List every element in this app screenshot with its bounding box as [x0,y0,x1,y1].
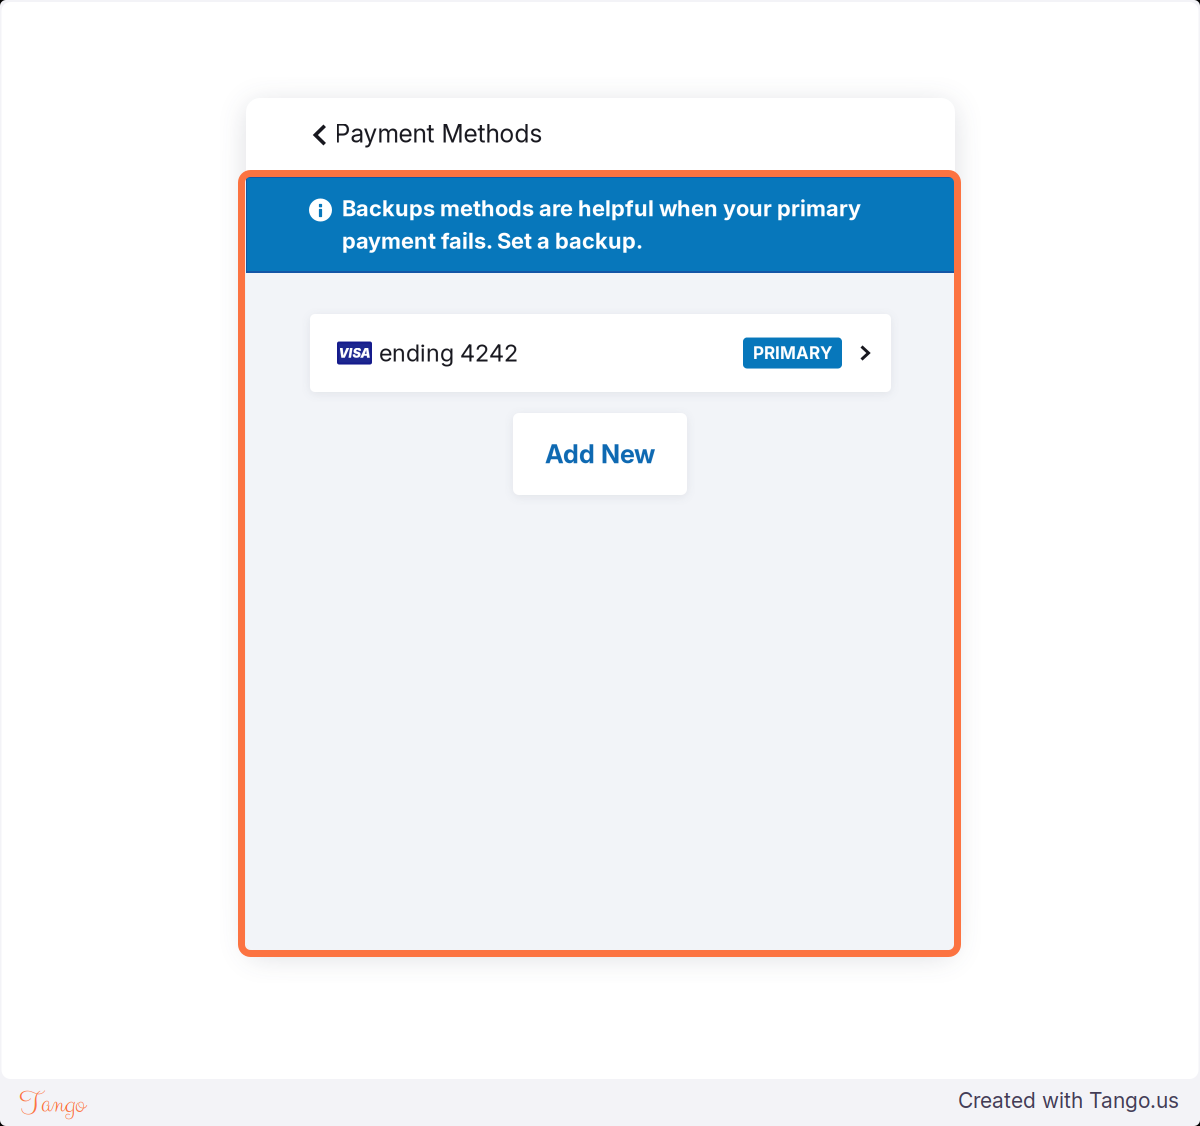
button[interactable]: Payment Methods [246,98,560,169]
button[interactable]: VISA [310,314,891,392]
staticText: Created with Tango.us [958,1088,1179,1113]
button[interactable]: Created with Tango.us [958,1090,1179,1115]
staticText: Add New [545,439,655,469]
button[interactable]: Add New [513,413,687,495]
button[interactable]: Tango home [0,1079,66,1119]
staticText: Payment Methods [334,118,542,148]
staticText: PRIMARY [753,343,832,363]
staticText: payment fails. Set a backup. [342,227,643,254]
staticText: VISA [338,345,370,361]
staticText: Backups methods are helpful when your pr… [342,195,861,221]
staticText: ending 4242 [379,339,518,367]
staticText: Tango [19,1084,85,1124]
